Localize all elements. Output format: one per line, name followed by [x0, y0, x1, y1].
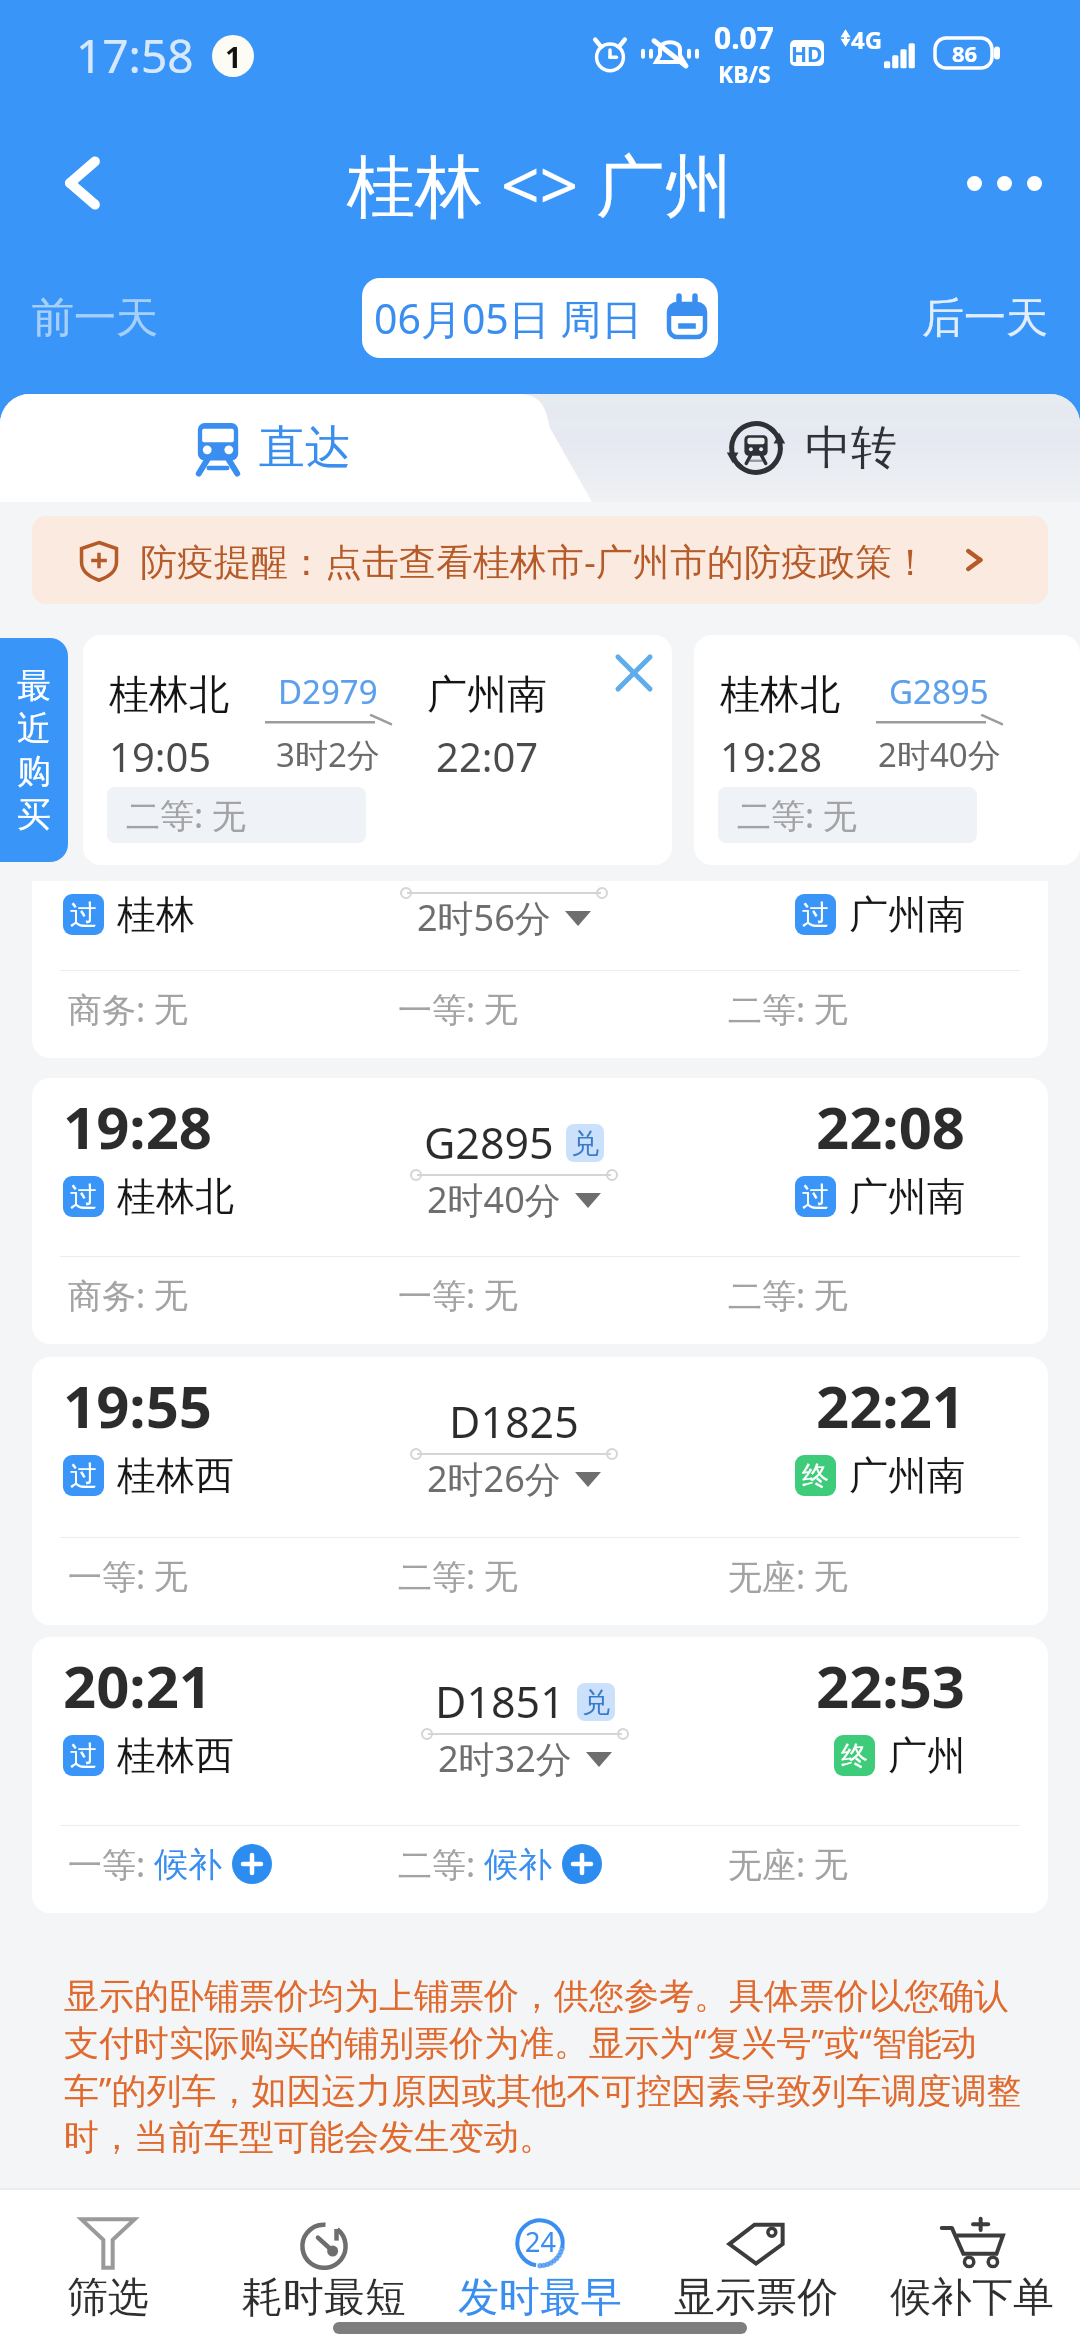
staticText: 0.07: [714, 17, 774, 58]
staticText: 4G: [851, 23, 883, 56]
staticText: 一等:: [398, 1272, 484, 1318]
button[interactable]: 桂林北: [83, 635, 672, 865]
button[interactable]: 防疫提醒：点击查看桂林市-广州市的防疫政策！: [32, 516, 1048, 604]
staticText: 候补: [154, 1843, 222, 1886]
staticText: 一等:: [68, 1841, 154, 1887]
staticText: 无: [154, 1274, 188, 1317]
staticText: 二等:: [728, 986, 814, 1032]
staticText: 买: [17, 793, 51, 836]
staticText: 无: [154, 988, 188, 1031]
staticText: 二等: 无: [126, 792, 246, 838]
staticText: 二等:: [398, 1841, 484, 1887]
staticText: 86: [952, 38, 978, 68]
staticText: 过: [70, 898, 97, 932]
staticText: 无: [154, 1555, 188, 1598]
button[interactable]: More options: [952, 131, 1056, 235]
staticText: 发时最早: [458, 2272, 622, 2324]
staticText: 一等:: [68, 1553, 154, 1599]
staticText: D2979: [278, 669, 378, 714]
button[interactable]: 后一天: [902, 278, 1068, 359]
staticText: 最: [17, 664, 51, 707]
staticText: 广州南: [849, 1172, 966, 1221]
staticText: 无: [814, 1555, 848, 1598]
staticText: HD: [791, 40, 823, 66]
staticText: 桂林北: [109, 669, 229, 719]
staticText: 显示的卧铺票价均为上铺票价，供您参考。具体票价以您确认支付时实际购买的铺别票价为…: [64, 1974, 1042, 2160]
button[interactable]: 桂林北: [694, 635, 1080, 865]
staticText: 22:07: [816, 805, 966, 884]
staticText: 2时32分: [438, 1734, 572, 1783]
staticText: 24: [525, 2223, 556, 2260]
button[interactable]: 24: [432, 2216, 648, 2340]
button[interactable]: 20:21: [32, 1637, 1048, 1913]
staticText: 广州南: [849, 1451, 966, 1500]
staticText: 19:05: [109, 729, 212, 783]
staticText: 二等: 无: [737, 792, 857, 838]
button[interactable]: 显示票价: [648, 2216, 864, 2340]
staticText: 19:28: [720, 729, 823, 783]
staticText: 兑: [582, 1685, 610, 1720]
staticText: 桂林西: [117, 1451, 234, 1500]
staticText: 桂林 <> 广州: [347, 137, 733, 230]
staticText: 广州南: [427, 669, 547, 719]
staticText: 中转: [805, 419, 897, 477]
staticText: 22:21: [816, 1366, 966, 1445]
staticText: 后一天: [922, 292, 1048, 345]
staticText: 无: [484, 1555, 518, 1598]
staticText: 二等:: [728, 1272, 814, 1318]
staticText: 二等:: [398, 1553, 484, 1599]
staticText: 无: [484, 988, 518, 1031]
staticText: 无座:: [728, 1841, 814, 1887]
staticText: 2时40分: [427, 1175, 561, 1224]
button[interactable]: 06月05日 周日: [362, 278, 718, 358]
staticText: 过: [70, 1459, 97, 1493]
staticText: 候补: [484, 1843, 552, 1886]
staticText: 无座:: [728, 1553, 814, 1599]
button[interactable]: 中转: [544, 394, 1080, 502]
button[interactable]: Close: [596, 635, 672, 711]
staticText: 2时40分: [878, 732, 1001, 777]
staticText: 兑: [571, 1126, 599, 1161]
staticText: 桂林: [117, 890, 195, 939]
staticText: 商务:: [68, 986, 154, 1032]
staticText: KB/S: [718, 58, 771, 89]
button[interactable]: 前一天: [12, 278, 178, 359]
staticText: 06月05日 周日: [374, 290, 643, 346]
staticText: 广州南: [849, 890, 966, 939]
staticText: 候补下单: [890, 2272, 1054, 2324]
button[interactable]: 候补下单: [864, 2216, 1080, 2340]
staticText: 近: [17, 707, 51, 750]
button[interactable]: 最: [0, 638, 68, 862]
staticText: 3时2分: [276, 732, 380, 777]
button[interactable]: 耗时最短: [216, 2216, 432, 2340]
staticText: 桂林北: [117, 1172, 234, 1221]
button[interactable]: 直达: [0, 394, 545, 502]
button[interactable]: 筛选: [0, 2216, 216, 2340]
staticText: 终: [841, 1739, 868, 1773]
staticText: 过: [70, 1180, 97, 1214]
staticText: 22:53: [816, 1646, 966, 1725]
button[interactable]: 19:05: [32, 796, 1048, 1058]
staticText: 筛选: [67, 2272, 149, 2324]
staticText: 兑: [561, 844, 589, 879]
button[interactable]: 19:28: [32, 1078, 1048, 1344]
button[interactable]: 19:55: [32, 1357, 1048, 1625]
staticText: 19:05: [63, 805, 213, 884]
staticText: 过: [802, 1180, 829, 1214]
staticText: D1825: [449, 1392, 579, 1451]
staticText: 购: [17, 750, 51, 793]
staticText: 显示票价: [674, 2272, 838, 2324]
staticText: 桂林西: [117, 1731, 234, 1780]
staticText: 无: [814, 1274, 848, 1317]
button[interactable]: Back: [36, 136, 130, 230]
staticText: 无: [484, 1274, 518, 1317]
staticText: 2时56分: [417, 893, 551, 942]
staticText: 商务:: [68, 1272, 154, 1318]
staticText: 无: [814, 988, 848, 1031]
staticText: 一等:: [398, 986, 484, 1032]
staticText: 耗时最短: [242, 2272, 406, 2324]
staticText: 17:58: [76, 24, 194, 87]
staticText: 广州: [888, 1731, 966, 1780]
staticText: 22:07: [436, 729, 539, 783]
staticText: D1851: [435, 1672, 565, 1731]
